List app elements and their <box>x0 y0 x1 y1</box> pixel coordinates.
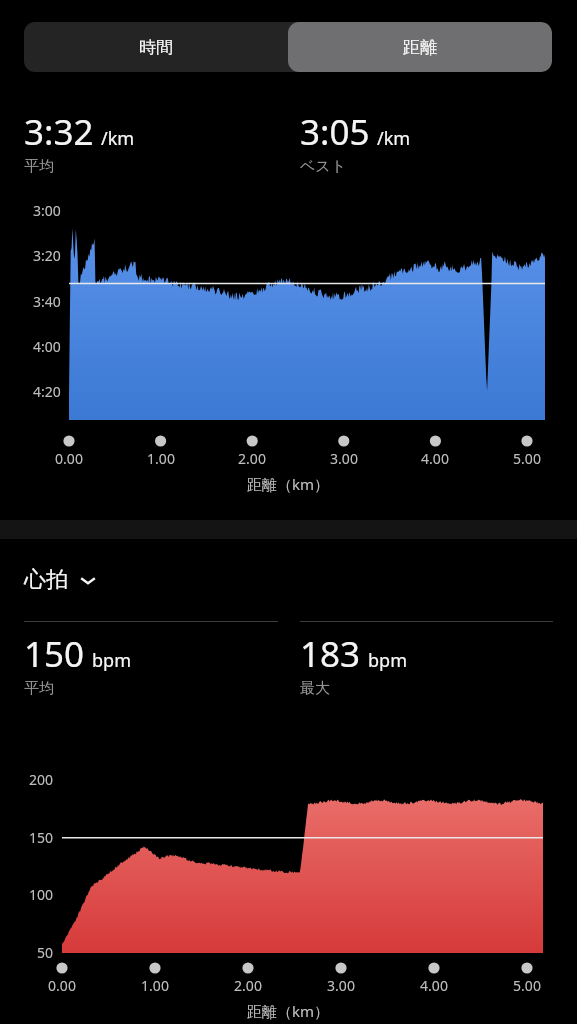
staticText: bpm <box>92 648 131 673</box>
staticText: 150 <box>29 828 54 847</box>
staticText: 4:20 <box>33 382 61 401</box>
staticText: 100 <box>29 885 54 904</box>
staticText: 183 <box>300 630 361 678</box>
staticText: 距離 <box>403 37 437 58</box>
staticText: bpm <box>368 648 407 673</box>
button[interactable]: 心拍 <box>24 566 97 594</box>
staticText: 200 <box>29 770 54 789</box>
staticText: 1.00 <box>147 449 175 468</box>
staticText: 5.00 <box>513 449 541 468</box>
staticText: 0.00 <box>55 449 83 468</box>
staticText: 3:05 <box>300 108 370 156</box>
staticText: 距離（km） <box>247 474 330 494</box>
staticText: /km <box>377 126 411 151</box>
staticText: 0.00 <box>48 976 76 995</box>
staticText: 3:20 <box>33 246 61 265</box>
staticText: 3:32 <box>24 108 94 156</box>
staticText: 距離（km） <box>247 1001 330 1021</box>
staticText: 心拍 <box>24 566 68 594</box>
staticText: 4.00 <box>420 976 448 995</box>
staticText: 3.00 <box>327 976 355 995</box>
staticText: 時間 <box>139 37 173 58</box>
staticText: 平均 <box>24 157 54 176</box>
staticText: 3:40 <box>33 292 61 311</box>
staticText: 5.00 <box>513 976 541 995</box>
staticText: /km <box>101 126 135 151</box>
staticText: 1.00 <box>141 976 169 995</box>
staticText: 最大 <box>300 679 330 698</box>
other: 心拍を展開 <box>79 571 97 589</box>
button[interactable]: 時間 <box>24 22 288 72</box>
staticText: 50 <box>37 943 54 962</box>
staticText: 3.00 <box>330 449 358 468</box>
staticText: 150 <box>24 630 85 678</box>
staticText: 2.00 <box>234 976 262 995</box>
staticText: 平均 <box>24 679 54 698</box>
staticText: 4:00 <box>33 337 61 356</box>
button[interactable]: 距離 <box>288 22 552 72</box>
staticText: ベスト <box>300 157 347 176</box>
staticText: 4.00 <box>421 449 449 468</box>
staticText: 2.00 <box>238 449 266 468</box>
staticText: 3:00 <box>33 201 61 220</box>
